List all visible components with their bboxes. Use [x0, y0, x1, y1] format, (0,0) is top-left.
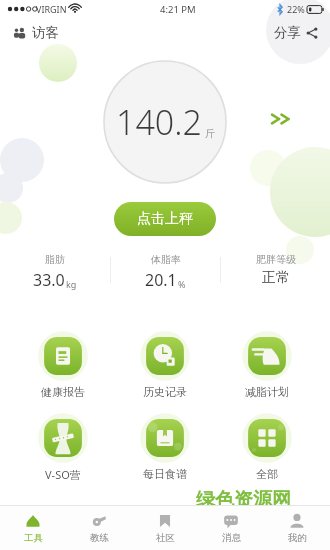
staticText: 教练 [90, 532, 109, 544]
button[interactable]: 访客 [10, 21, 61, 44]
button[interactable]: V-SO营 [12, 411, 114, 482]
staticText: 社区 [156, 532, 175, 544]
staticText: 健康报告 [41, 385, 85, 399]
button[interactable]: 工具 [0, 506, 66, 550]
staticText: VIRGIN [36, 3, 67, 15]
staticText: 正常 [262, 269, 290, 287]
staticText: 全部 [256, 467, 278, 481]
button[interactable]: 减脂计划 [216, 329, 318, 399]
button[interactable]: 分享 [272, 21, 320, 44]
staticText: 140.2 [116, 99, 202, 145]
staticText: kg [66, 278, 77, 290]
staticText: 20.1 [145, 269, 177, 291]
button[interactable]: 教练 [66, 506, 132, 550]
staticText: 访客 [32, 24, 59, 41]
staticText: 33.0 [33, 269, 65, 291]
other: Share [306, 27, 318, 39]
staticText: 脂肪 [45, 253, 65, 266]
staticText: 历史记录 [143, 385, 187, 399]
staticText: www.downcc.com [196, 512, 289, 527]
staticText: 分享 [274, 24, 301, 41]
staticText: 消息 [222, 532, 241, 544]
staticText: 我的 [288, 532, 307, 544]
staticText: 点击上秤 [137, 210, 193, 228]
button[interactable]: 历史记录 [114, 329, 216, 399]
button[interactable]: 每日食谱 [114, 411, 216, 481]
staticText: % [178, 278, 186, 290]
staticText: 斤 [205, 127, 215, 140]
staticText: 减脂计划 [245, 385, 289, 399]
staticText: 22% [287, 3, 305, 15]
button[interactable]: 我的 [264, 506, 330, 550]
button[interactable]: 肥胖等级 [221, 253, 330, 287]
staticText: 工具 [24, 532, 43, 544]
button[interactable]: 点击上秤 [114, 202, 216, 236]
staticText: 每日食谱 [143, 467, 187, 481]
button[interactable]: 体脂率 [111, 253, 220, 291]
button[interactable]: 健康报告 [12, 329, 114, 399]
button[interactable]: 社区 [132, 506, 198, 550]
staticText: 4:21 PM [160, 3, 196, 16]
staticText: 肥胖等级 [256, 253, 296, 266]
staticText: V-SO营 [45, 467, 81, 482]
button[interactable]: 脂肪 [0, 253, 110, 291]
staticText: 体脂率 [151, 253, 181, 266]
button[interactable]: Next [270, 110, 294, 128]
button[interactable]: 消息 [198, 506, 264, 550]
button[interactable]: 全部 [216, 411, 318, 481]
staticText: 绿色资源网 [196, 488, 291, 512]
